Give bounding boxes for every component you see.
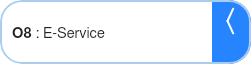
button[interactable]: O8	[0, 0, 212, 64]
staticText: O8	[12, 26, 32, 41]
staticText: : E-Service	[32, 26, 105, 41]
button[interactable]: Previous	[212, 0, 251, 64]
